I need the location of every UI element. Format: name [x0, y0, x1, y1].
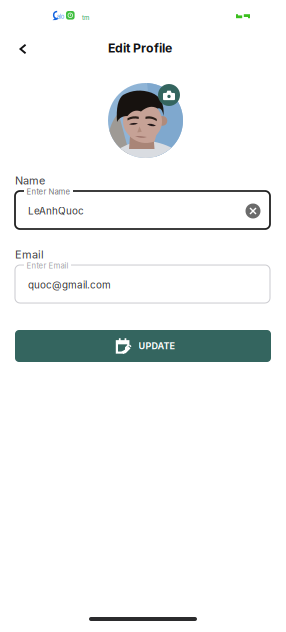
button[interactable]: Back — [6, 34, 40, 64]
staticText: UPDATE — [138, 340, 175, 351]
staticText: LeAnhQuoc — [28, 205, 84, 217]
staticText: Enter Email — [26, 261, 68, 270]
staticText: Name — [15, 174, 45, 187]
staticText: quoc@gmail.com — [28, 279, 111, 291]
button[interactable]: Clear name — [238, 196, 268, 226]
staticText: Edit Profile — [108, 41, 172, 55]
button[interactable]: Change profile photo — [158, 84, 180, 106]
staticText: Enter Name — [26, 187, 70, 196]
staticText: tm — [82, 14, 89, 21]
staticText: Email — [15, 248, 44, 261]
button[interactable]: UPDATE — [15, 330, 271, 362]
staticText: alo — [57, 13, 65, 20]
